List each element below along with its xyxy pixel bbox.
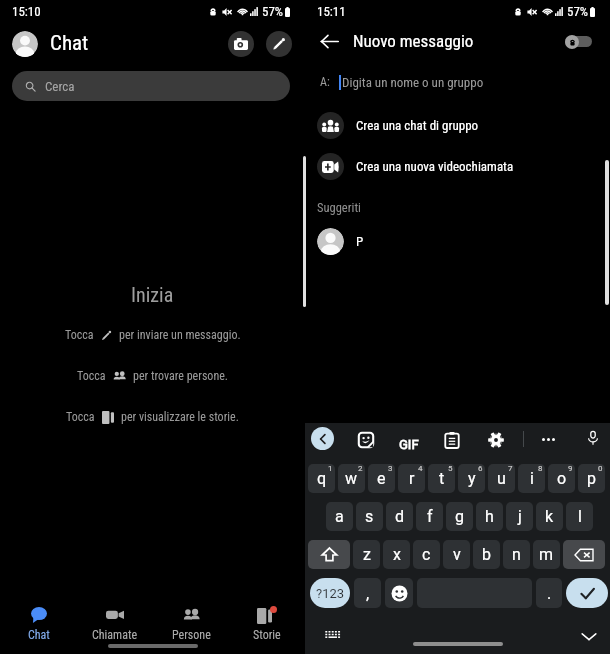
button[interactable]: z [353,540,380,569]
button[interactable]: Storie [229,606,305,642]
button[interactable]: Chat [0,606,77,642]
staticText: c [422,545,431,564]
button[interactable]: Secret conversation toggle [565,34,592,49]
button[interactable]: l [566,502,593,531]
button[interactable]: m [533,540,560,569]
staticText: b [482,545,491,564]
staticText: Persone [172,628,211,642]
staticText: w [345,469,358,488]
staticText: a [335,507,344,526]
staticText: h [485,507,494,526]
button[interactable]: Enter [566,578,608,608]
staticText: Crea una nuova videochiamata [356,159,514,174]
button[interactable]: Persone [153,606,229,642]
staticText: x [393,545,401,564]
staticText: l [578,507,582,526]
button[interactable]: More options [539,430,558,449]
button[interactable]: y [458,464,485,493]
button[interactable]: New message [266,31,292,57]
button[interactable]: ?123 [310,578,350,608]
button[interactable]: w [338,464,365,493]
button[interactable]: . [536,578,562,608]
button[interactable]: Chiamate [77,606,153,642]
staticText: d [395,507,405,526]
button[interactable]: Settings [486,430,505,449]
button[interactable]: c [413,540,440,569]
button[interactable]: P [305,228,610,255]
staticText: r [409,469,415,488]
staticText: o [557,469,567,488]
staticText: Chat [28,628,50,642]
staticText: z [363,545,371,564]
staticText: Crea una chat di gruppo [356,118,479,133]
staticText: n [512,545,521,564]
button[interactable]: q [308,464,335,493]
button[interactable]: Cerca [12,71,290,101]
button[interactable]: x [383,540,410,569]
button[interactable]: Camera [228,31,254,57]
staticText: 57% [567,4,589,19]
button[interactable]: Switch keyboard [317,623,349,647]
button[interactable]: , [354,578,381,608]
button[interactable]: a [326,502,353,531]
button[interactable]: Back [311,427,334,450]
staticText: P [356,234,364,249]
staticText: y [468,469,476,488]
button[interactable]: h [476,502,503,531]
staticText: e [377,469,386,488]
button[interactable]: f [416,502,443,531]
staticText: per inviare un messaggio. [119,328,241,342]
button[interactable]: o [548,464,575,493]
staticText: Suggeriti [317,200,361,215]
staticText: , [366,584,370,603]
staticText: 9 [568,464,573,473]
staticText: 2 [358,464,363,473]
button[interactable]: t [428,464,455,493]
button[interactable]: n [503,540,530,569]
button[interactable]: r [398,464,425,493]
staticText: Cerca [45,79,75,94]
button[interactable]: Emoji [385,578,413,608]
button[interactable]: Stickers [355,429,376,450]
staticText: 8 [538,464,543,473]
staticText: A: [320,75,330,89]
staticText: m [539,545,554,564]
staticText: 1 [328,464,333,473]
button[interactable]: s [356,502,383,531]
button[interactable]: k [536,502,563,531]
staticText: u [497,469,506,488]
staticText: 3 [388,464,393,473]
button[interactable]: Crea una chat di gruppo [305,108,610,142]
staticText: Tocca [65,328,94,342]
button[interactable]: b [473,540,500,569]
button[interactable]: Shift [308,540,350,569]
staticText: 0 [598,464,603,473]
staticText: v [453,545,461,564]
button[interactable]: j [506,502,533,531]
staticText: p [587,469,596,488]
staticText: per visualizzare le storie. [121,410,239,424]
button[interactable]: Crea una nuova videochiamata [305,149,610,183]
button[interactable]: Backspace [563,540,605,569]
staticText: Tocca [66,410,95,424]
button[interactable]: p [578,464,605,493]
button[interactable]: g [446,502,473,531]
button[interactable]: Voice input [583,428,603,448]
button[interactable]: Hide keyboard [575,623,603,649]
button[interactable]: u [488,464,515,493]
button[interactable]: Back [318,30,340,52]
staticText: Inizia [131,283,174,306]
staticText: 6 [478,464,483,473]
staticText: 15:11 [317,4,346,19]
button[interactable]: Clipboard [442,430,461,449]
staticText: 7 [508,464,513,473]
button[interactable]: GIF [394,430,423,459]
button[interactable]: v [443,540,470,569]
button[interactable]: i [518,464,545,493]
staticText: i [530,469,534,488]
staticText: Chat [50,31,89,56]
button[interactable]: d [386,502,413,531]
staticText: 57% [262,4,284,19]
button[interactable]: e [368,464,395,493]
